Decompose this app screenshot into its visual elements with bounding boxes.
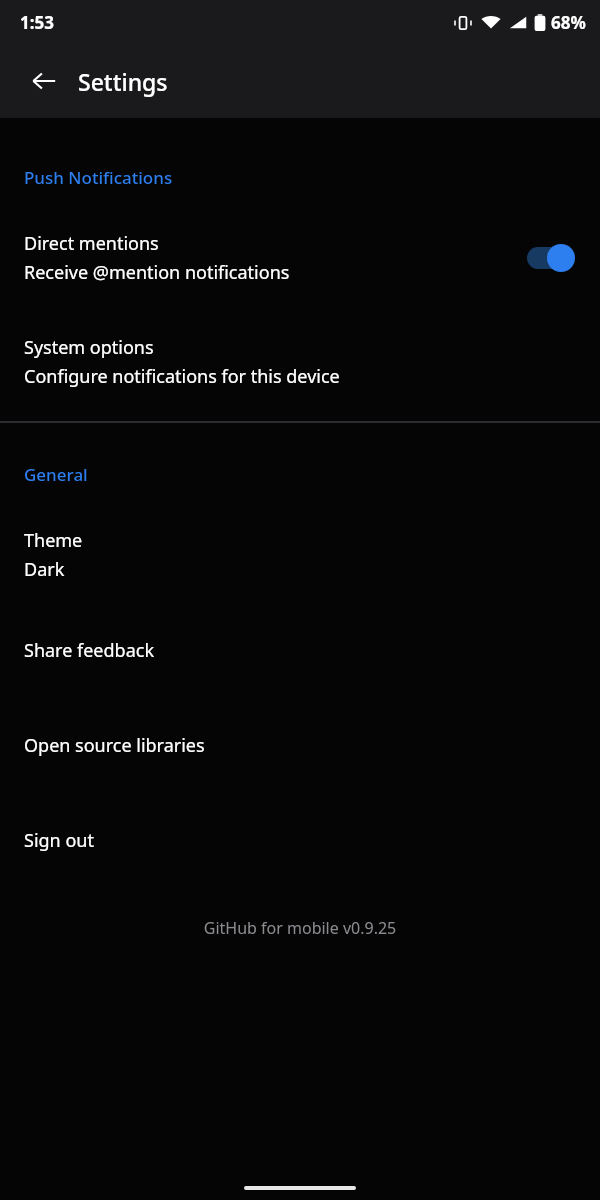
button[interactable]: Direct mentions [0, 225, 600, 291]
staticText: Push Notifications [24, 166, 173, 189]
staticText: Open source libraries [24, 733, 205, 758]
staticText: 1:53 [20, 11, 54, 34]
staticText: Settings [78, 66, 168, 97]
staticText: Direct mentions [24, 231, 159, 256]
button[interactable]: System options [0, 329, 600, 395]
staticText: General [24, 463, 88, 486]
staticText: Sign out [24, 828, 94, 853]
staticText: 68% [551, 11, 586, 34]
staticText: Dark [24, 557, 65, 582]
button[interactable]: Theme [0, 522, 600, 588]
staticText: System options [24, 335, 154, 360]
other: Direct mentions toggle [526, 243, 578, 273]
button[interactable]: Share feedback [0, 632, 600, 669]
staticText: GitHub for mobile v0.9.25 [0, 917, 600, 939]
staticText: Receive @mention notifications [24, 260, 290, 285]
staticText: Theme [24, 528, 83, 553]
staticText: Configure notifications for this device [24, 364, 340, 389]
button[interactable]: Back [20, 57, 68, 105]
button[interactable]: Open source libraries [0, 727, 600, 764]
button[interactable]: Sign out [0, 822, 600, 859]
staticText: Share feedback [24, 638, 154, 663]
